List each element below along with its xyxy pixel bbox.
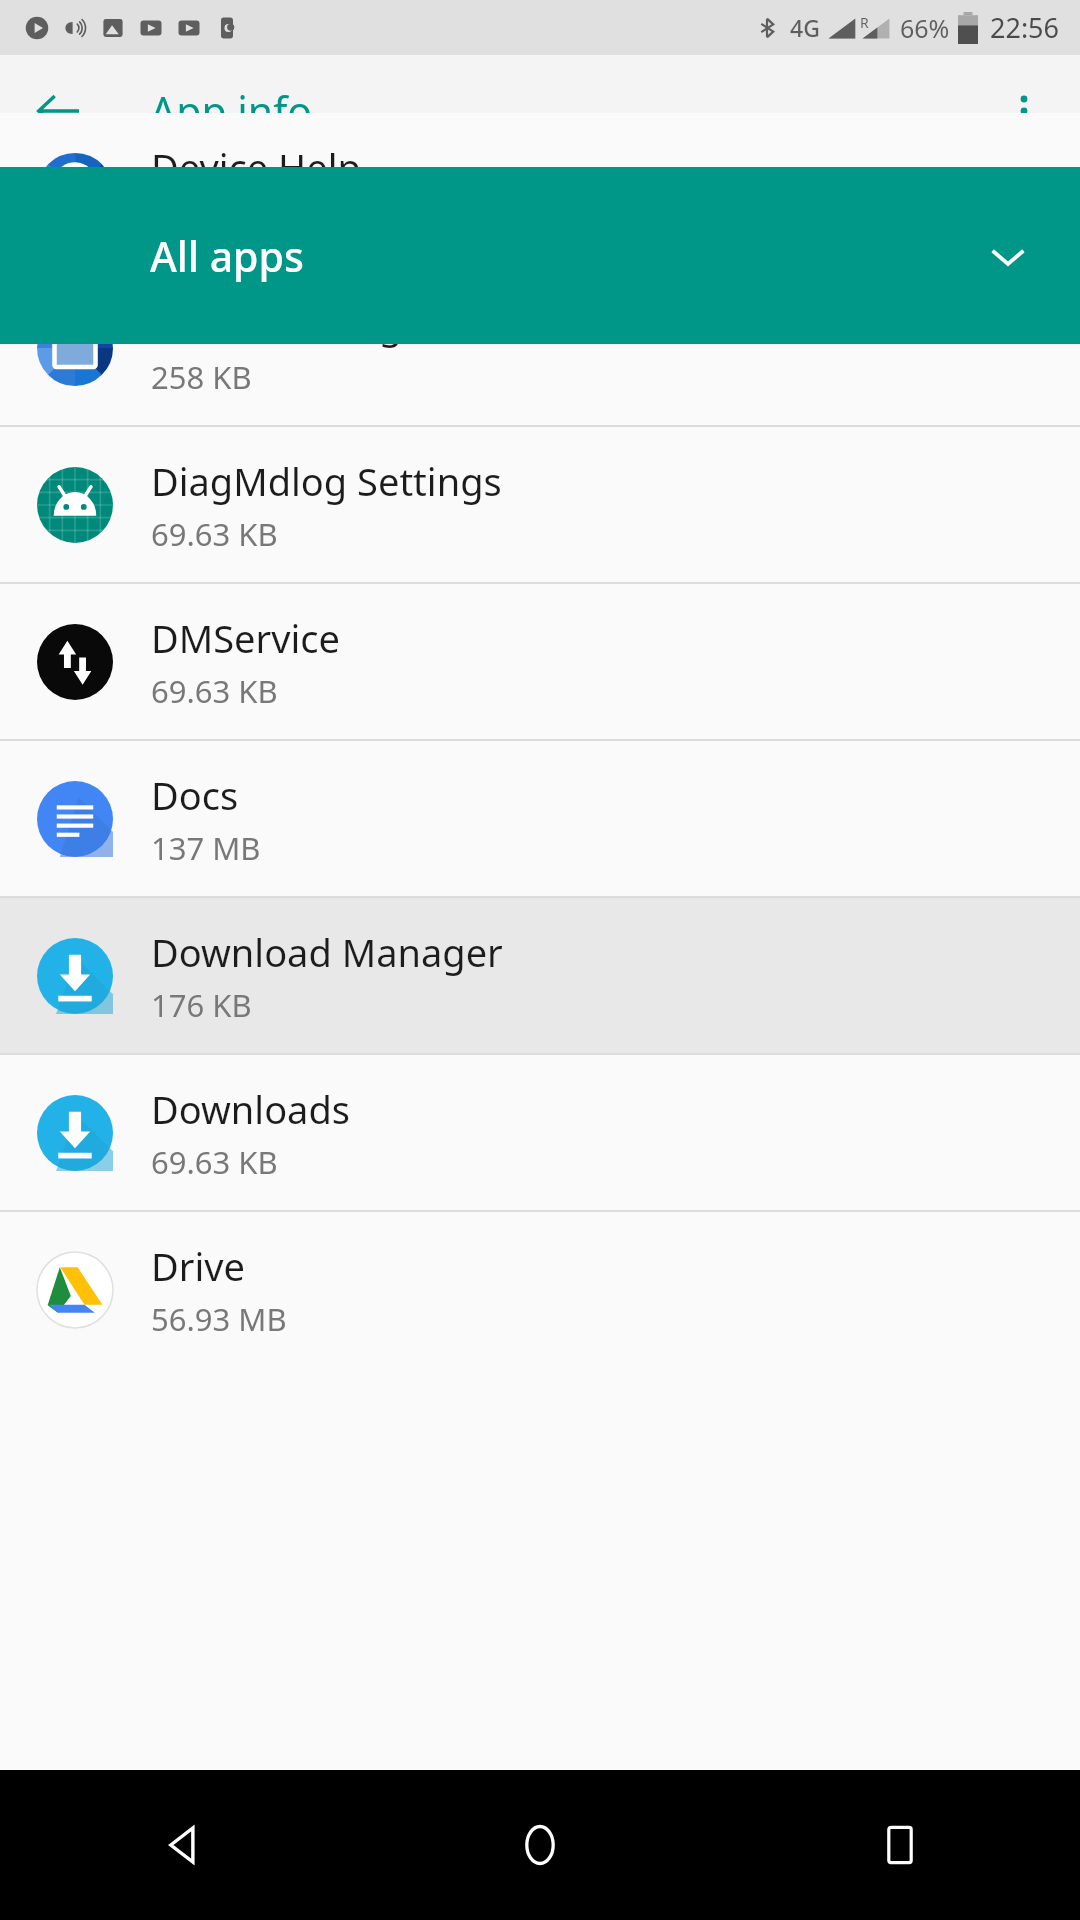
staticText: R: [860, 13, 869, 32]
button[interactable]: Download Manager: [0, 898, 1080, 1053]
staticText: 69.63 KB: [151, 513, 278, 555]
button[interactable]: Drive: [0, 1212, 1080, 1367]
staticText: 56.93 MB: [151, 1298, 287, 1340]
button[interactable]: Device Management: [0, 270, 1080, 425]
staticText: DMService: [151, 612, 340, 664]
staticText: App info: [150, 83, 313, 139]
button[interactable]: Home: [360, 1770, 720, 1920]
staticText: Drive: [151, 1240, 245, 1292]
staticText: Device Help: [151, 141, 361, 193]
staticText: 66%: [900, 11, 950, 45]
button[interactable]: All apps: [0, 167, 1080, 344]
button[interactable]: Navigate up: [18, 71, 98, 151]
staticText: Device Management: [151, 298, 518, 350]
staticText: DiagMdlog Settings: [151, 455, 502, 507]
button[interactable]: Downloads: [0, 1055, 1080, 1210]
staticText: Downloads: [151, 1083, 351, 1135]
button[interactable]: DMService: [0, 584, 1080, 739]
staticText: 205 KB: [151, 199, 252, 241]
staticText: Docs: [151, 769, 239, 821]
staticText: 69.63 KB: [151, 670, 278, 712]
button[interactable]: Recent apps: [720, 1770, 1080, 1920]
staticText: 4G: [790, 12, 820, 43]
staticText: 137 MB: [151, 827, 261, 869]
staticText: 176 KB: [151, 984, 252, 1026]
button[interactable]: Device Help: [0, 113, 1080, 268]
staticText: All apps: [150, 228, 304, 284]
button[interactable]: More options: [984, 71, 1064, 151]
staticText: 22:56: [990, 9, 1060, 46]
button[interactable]: DiagMdlog Settings: [0, 427, 1080, 582]
button[interactable]: Docs: [0, 741, 1080, 896]
button[interactable]: Back: [0, 1770, 360, 1920]
staticText: Download Manager: [151, 926, 503, 978]
staticText: 258 KB: [151, 356, 252, 398]
staticText: 69.63 KB: [151, 1141, 278, 1183]
